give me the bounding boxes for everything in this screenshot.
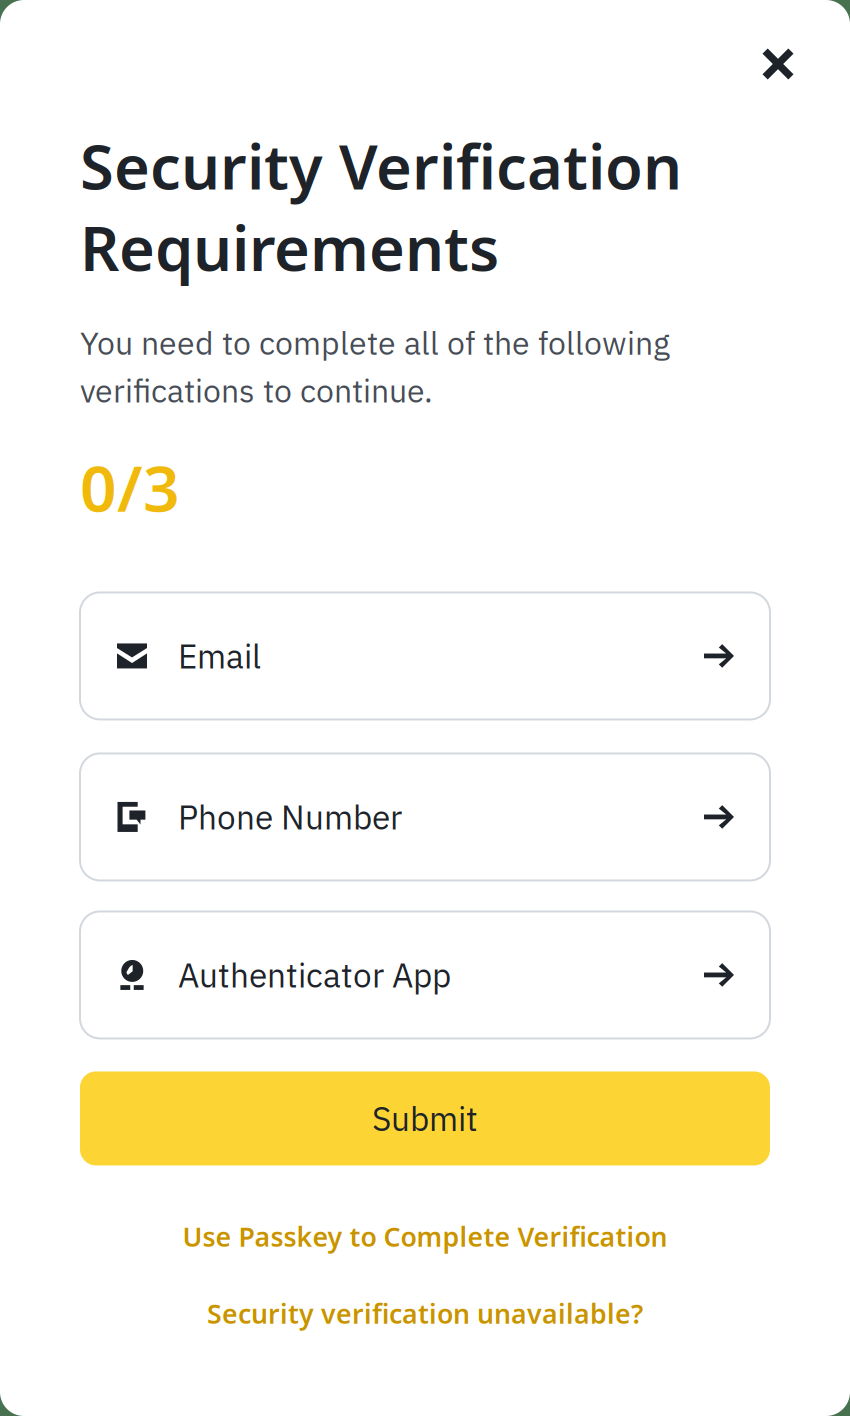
button[interactable]: Security verification unavailable? (80, 1288, 770, 1338)
button[interactable]: Submit (80, 1071, 770, 1165)
staticText: Use Passkey to Complete Verification (182, 1218, 667, 1255)
staticText: 0/3 (80, 443, 180, 530)
button[interactable]: Email (80, 592, 770, 719)
staticText: Security Verification Requirements (80, 124, 682, 289)
staticText: Phone Number (178, 795, 402, 839)
staticText: Email (178, 634, 261, 678)
staticText: Submit (372, 1097, 478, 1140)
staticText: Security verification unavailable? (207, 1295, 643, 1332)
staticText: You need to complete all of the followin… (80, 322, 670, 411)
button[interactable]: Close (750, 36, 806, 92)
staticText: Authenticator App (178, 953, 451, 997)
button[interactable]: Authenticator App (80, 911, 770, 1038)
button[interactable]: Phone Number (80, 753, 770, 880)
button[interactable]: Use Passkey to Complete Verification (80, 1211, 770, 1261)
